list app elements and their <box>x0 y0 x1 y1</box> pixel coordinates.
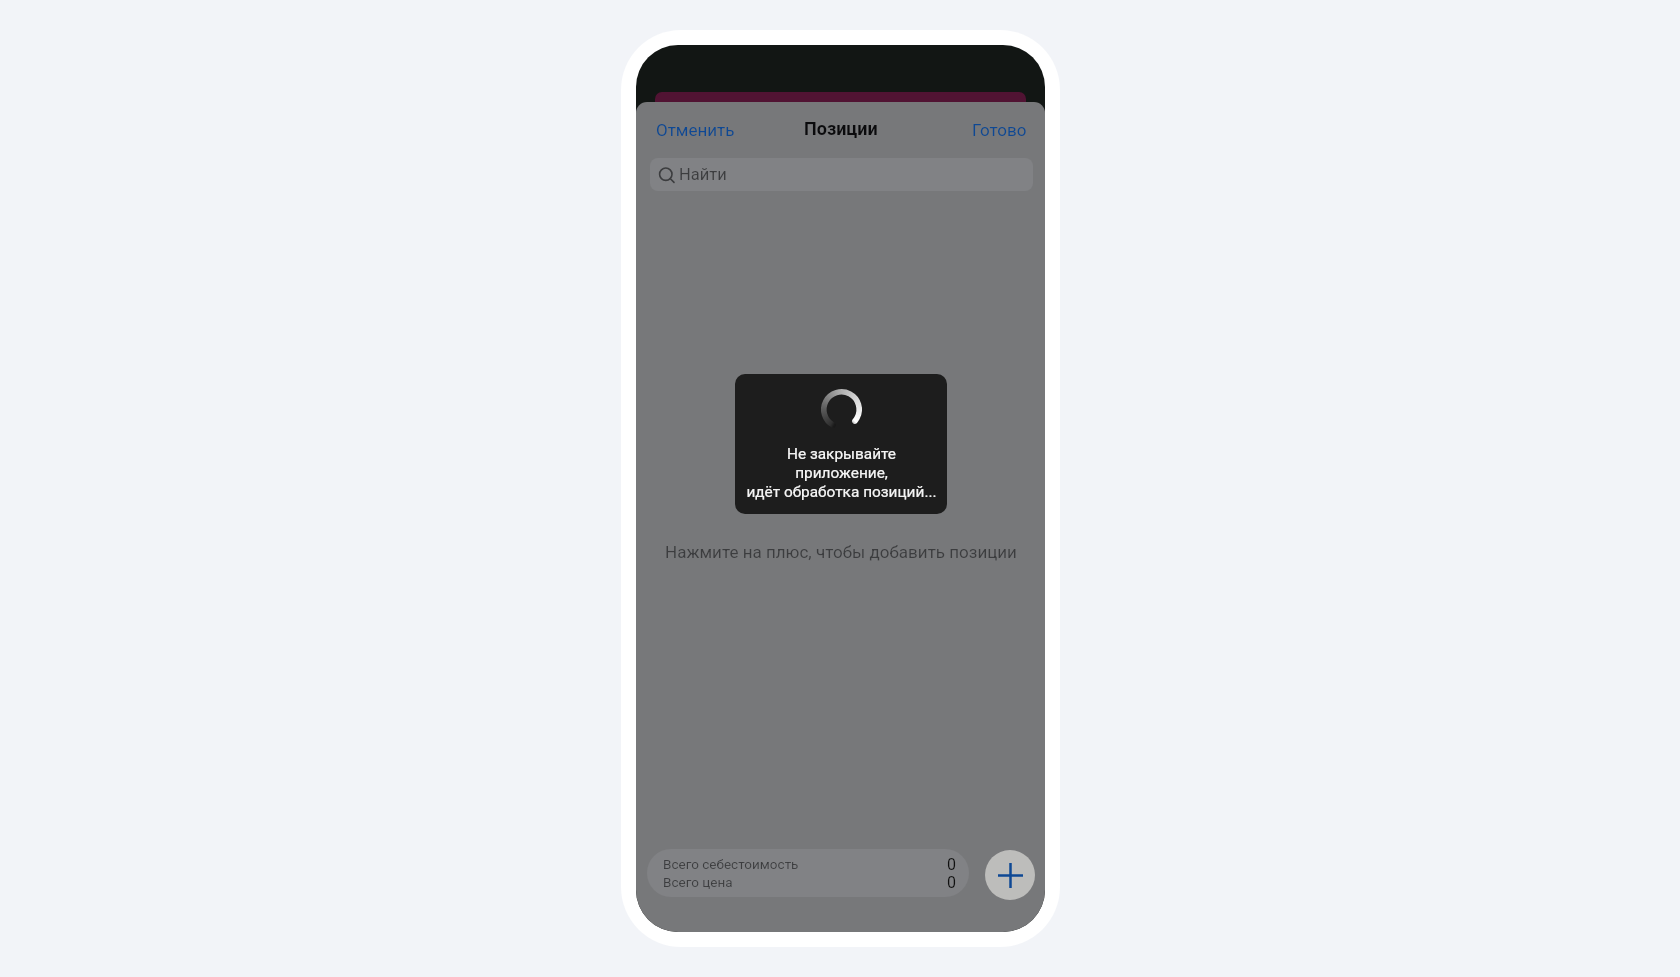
button[interactable]: Найти <box>650 158 1033 191</box>
staticText: Нажмите на плюс, чтобы добавить позиции <box>665 542 1017 562</box>
button[interactable]: Добавить позицию <box>985 850 1035 900</box>
button[interactable]: Готово <box>959 115 1040 145</box>
staticText: Позиции <box>804 118 878 139</box>
staticText: 0 <box>947 855 956 873</box>
button[interactable]: Отменить <box>643 115 748 145</box>
staticText: Не закрывайте приложение, идёт обработка… <box>746 445 937 501</box>
staticText: Найти <box>679 165 727 184</box>
staticText: 0 <box>947 873 956 891</box>
button[interactable]: Всего себестоимость <box>647 849 969 897</box>
staticText: Всего себестоимость <box>663 856 799 872</box>
staticText: Готово <box>972 120 1027 140</box>
staticText: Всего цена <box>663 874 733 890</box>
staticText: Отменить <box>656 120 735 140</box>
